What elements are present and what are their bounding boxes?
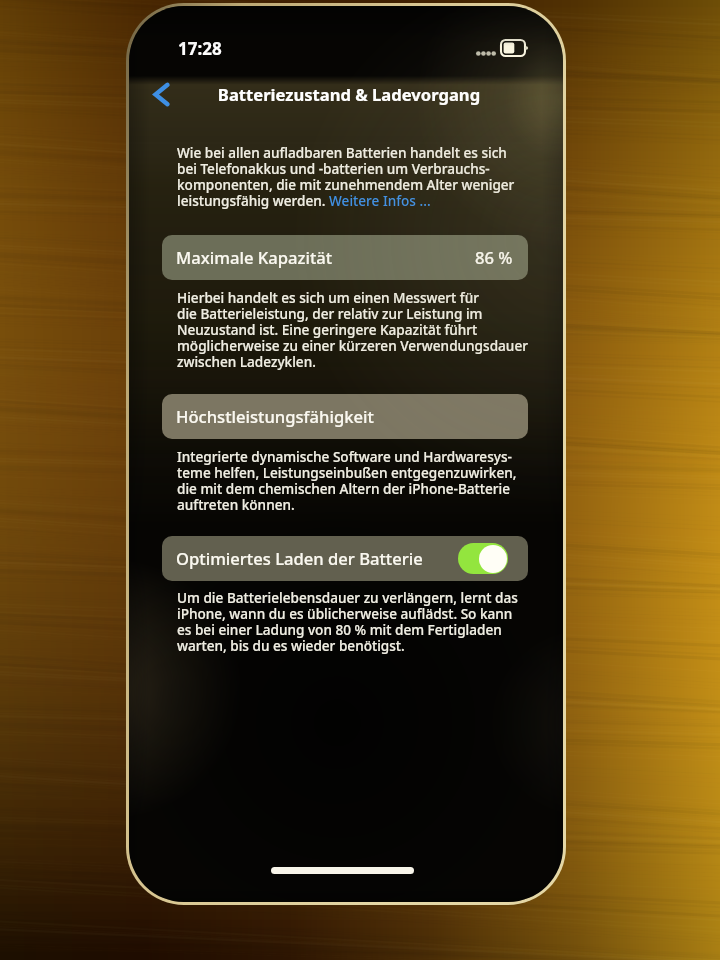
button[interactable]: Zurück <box>139 72 183 116</box>
staticText: Höchstleistungsfähigkeit <box>176 405 374 428</box>
staticText: Wie bei allen aufladbaren Batterien hand… <box>177 143 515 210</box>
staticText: Optimiertes Laden der Batterie <box>176 547 423 570</box>
staticText: Hierbei handelt es sich um einen Messwer… <box>177 288 528 371</box>
staticText: 86 % <box>475 246 513 269</box>
button[interactable]: Maximale Kapazität <box>162 235 528 280</box>
staticText: Um die Batterielebensdauer zu verlängern… <box>177 588 518 655</box>
staticText: Batteriezustand & Ladevorgang <box>135 83 563 106</box>
staticText: Maximale Kapazität <box>176 246 333 269</box>
staticText: Integrierte dynamische Software und Hard… <box>177 447 517 514</box>
staticText: 17:28 <box>178 37 222 60</box>
button[interactable]: Optimiertes Laden der Batterie <box>162 536 528 581</box>
button[interactable]: Optimiertes Laden der Batterie <box>458 543 508 574</box>
button[interactable]: Höchstleistungsfähigkeit <box>162 394 528 439</box>
